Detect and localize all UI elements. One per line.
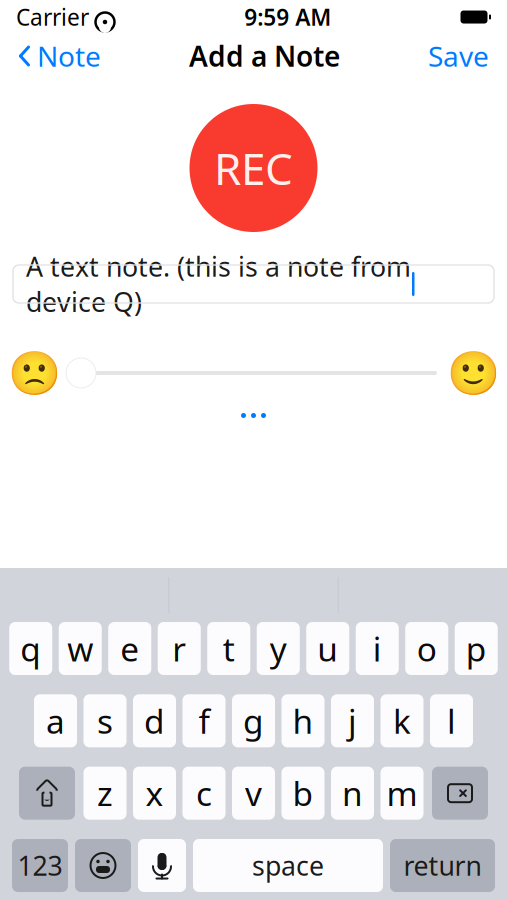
staticText: Note bbox=[37, 37, 101, 75]
button[interactable]: s bbox=[83, 694, 126, 747]
staticText: b bbox=[292, 771, 313, 815]
button[interactable]: o bbox=[405, 622, 448, 675]
staticText: space bbox=[252, 848, 324, 883]
staticText: Save bbox=[428, 37, 489, 75]
button[interactable]: space bbox=[193, 839, 383, 892]
button[interactable]: d bbox=[133, 694, 176, 747]
staticText: a bbox=[46, 699, 65, 743]
button[interactable]: Dictate bbox=[138, 839, 186, 892]
button[interactable]: w bbox=[59, 622, 102, 675]
staticText: z bbox=[97, 771, 113, 815]
staticText: g bbox=[243, 699, 264, 743]
button[interactable]: Note bbox=[0, 31, 101, 81]
staticText: i bbox=[373, 626, 382, 671]
staticText: y bbox=[270, 626, 287, 671]
staticText: f bbox=[198, 699, 209, 743]
staticText: return bbox=[403, 848, 481, 883]
staticText: Add a Note bbox=[189, 37, 340, 75]
staticText: A text note. (this is a note from device… bbox=[26, 249, 411, 319]
staticText: 9:59 AM bbox=[244, 2, 331, 32]
button[interactable]: j bbox=[331, 694, 374, 747]
button[interactable]: l bbox=[430, 694, 473, 747]
button[interactable]: q bbox=[9, 622, 52, 675]
button[interactable]: 123 bbox=[12, 839, 68, 892]
button[interactable]: t bbox=[207, 622, 250, 675]
staticText: x bbox=[145, 771, 163, 815]
staticText: v bbox=[245, 771, 262, 815]
button[interactable]: r bbox=[158, 622, 201, 675]
staticText: r bbox=[172, 626, 186, 671]
button[interactable]: v bbox=[232, 767, 275, 820]
button[interactable]: m bbox=[380, 767, 423, 820]
staticText: c bbox=[196, 771, 212, 815]
staticText: 🙁 bbox=[7, 349, 60, 397]
staticText: w bbox=[67, 626, 93, 671]
staticText: Carrier bbox=[16, 2, 89, 32]
staticText: o bbox=[417, 626, 437, 671]
staticText: REC bbox=[214, 139, 293, 197]
button[interactable]: n bbox=[331, 767, 374, 820]
staticText: e bbox=[120, 626, 139, 671]
staticText: h bbox=[292, 699, 313, 743]
staticText: q bbox=[20, 626, 41, 671]
button[interactable]: h bbox=[281, 694, 324, 747]
staticText: u bbox=[317, 626, 338, 671]
button[interactable]: Shift bbox=[19, 767, 75, 820]
button[interactable]: Save bbox=[428, 31, 507, 81]
staticText: n bbox=[342, 771, 363, 815]
staticText: 🙂 bbox=[446, 349, 499, 397]
staticText: p bbox=[466, 626, 487, 671]
staticText: k bbox=[393, 699, 411, 743]
staticText: d bbox=[144, 699, 165, 743]
button[interactable]: y bbox=[257, 622, 300, 675]
staticText: 123 bbox=[17, 848, 62, 883]
button[interactable]: x bbox=[133, 767, 176, 820]
button[interactable]: u bbox=[306, 622, 349, 675]
button[interactable]: More options bbox=[231, 403, 276, 428]
button[interactable]: Delete bbox=[432, 767, 488, 820]
button[interactable]: return bbox=[390, 839, 495, 892]
staticText: s bbox=[97, 699, 113, 743]
button[interactable]: i bbox=[356, 622, 399, 675]
button[interactable]: k bbox=[380, 694, 423, 747]
button[interactable]: a bbox=[34, 694, 77, 747]
button[interactable]: e bbox=[108, 622, 151, 675]
button[interactable]: p bbox=[455, 622, 498, 675]
button[interactable]: c bbox=[182, 767, 225, 820]
button[interactable]: REC bbox=[189, 104, 317, 232]
button[interactable]: g bbox=[232, 694, 275, 747]
button[interactable]: b bbox=[281, 767, 324, 820]
staticText: j bbox=[348, 699, 357, 743]
staticText: m bbox=[386, 771, 417, 815]
button[interactable]: z bbox=[83, 767, 126, 820]
staticText: l bbox=[447, 699, 456, 743]
button[interactable]: Emoji bbox=[75, 839, 131, 892]
button[interactable]: f bbox=[182, 694, 225, 747]
staticText: t bbox=[223, 626, 235, 671]
